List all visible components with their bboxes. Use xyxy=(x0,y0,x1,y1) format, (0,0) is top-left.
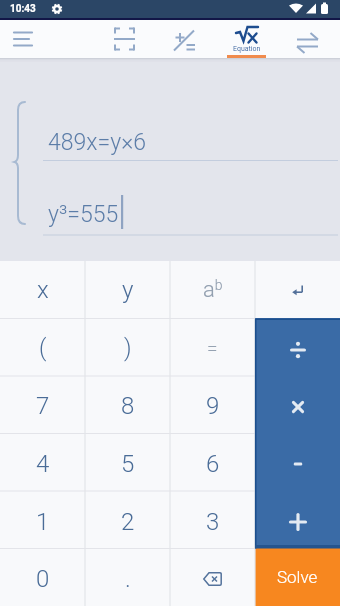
staticText: Solve xyxy=(277,567,318,587)
button[interactable]: 7 xyxy=(0,377,85,435)
staticText: . xyxy=(125,565,131,593)
staticText: = xyxy=(207,337,218,359)
staticText: 5 xyxy=(121,450,135,478)
staticText: x xyxy=(37,276,49,304)
staticText: y xyxy=(122,276,134,304)
staticText: y³=555 xyxy=(48,201,119,228)
button[interactable] xyxy=(170,551,255,606)
staticText: 0 xyxy=(36,565,50,593)
staticText: Equation xyxy=(233,45,261,53)
button[interactable] xyxy=(68,20,130,58)
button[interactable]: 5 xyxy=(85,435,170,493)
button[interactable]: ( xyxy=(0,319,85,377)
button[interactable] xyxy=(192,20,254,58)
button[interactable] xyxy=(130,20,192,58)
button[interactable]: x xyxy=(0,261,85,319)
button[interactable]: 3 xyxy=(170,493,255,551)
button[interactable] xyxy=(255,375,340,432)
staticText: ) xyxy=(124,335,132,362)
button[interactable]: . xyxy=(85,551,170,606)
button[interactable] xyxy=(254,20,340,58)
staticText: ( xyxy=(39,335,47,362)
button[interactable]: Solve xyxy=(255,548,340,606)
staticText: 4 xyxy=(36,450,50,478)
button[interactable]: 6 xyxy=(170,435,255,493)
staticText: 2 xyxy=(121,508,135,536)
button[interactable]: 2 xyxy=(85,493,170,551)
button[interactable] xyxy=(0,20,68,58)
button[interactable]: 8 xyxy=(85,377,170,435)
button[interactable]: ab xyxy=(170,261,255,319)
staticText: 6 xyxy=(206,450,220,478)
button[interactable] xyxy=(255,261,340,318)
button[interactable] xyxy=(255,432,340,490)
button[interactable]: 4 xyxy=(0,435,85,493)
staticText: 1 xyxy=(36,508,50,536)
button[interactable]: ) xyxy=(85,319,170,377)
staticText: ab xyxy=(203,277,223,303)
staticText: 8 xyxy=(121,392,135,420)
button[interactable]: 0 xyxy=(0,551,85,606)
staticText: 10:43 xyxy=(10,3,36,15)
button[interactable]: 9 xyxy=(170,377,255,435)
button[interactable]: = xyxy=(170,319,255,377)
staticText: 489x=y×6 xyxy=(48,129,146,156)
staticText: 9 xyxy=(206,392,220,420)
staticText: 7 xyxy=(36,392,50,420)
button[interactable]: y xyxy=(85,261,170,319)
staticText: 3 xyxy=(206,508,220,536)
button[interactable]: 1 xyxy=(0,493,85,551)
button[interactable] xyxy=(255,318,340,375)
button[interactable] xyxy=(255,490,340,548)
